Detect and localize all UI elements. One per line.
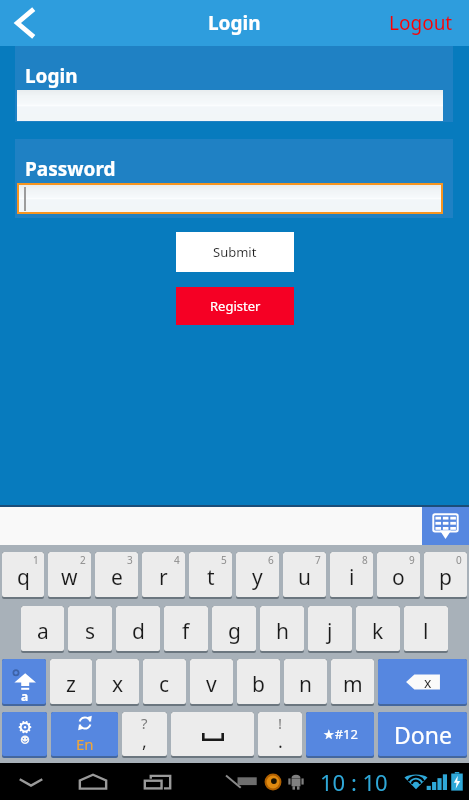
button[interactable]: Settings [2, 712, 47, 756]
button[interactable]: Symbols [306, 712, 374, 756]
staticText: . [278, 729, 283, 754]
staticText: Register [210, 297, 261, 315]
button[interactable] [19, 185, 441, 212]
staticText: Logout [389, 10, 453, 36]
staticText: 4 [174, 553, 180, 567]
button[interactable]: e [95, 552, 138, 597]
button[interactable]: Back [0, 0, 49, 46]
staticText: Login [208, 10, 261, 36]
button[interactable]: a [21, 606, 64, 651]
staticText: o [392, 563, 405, 592]
button[interactable] [17, 90, 443, 121]
button[interactable]: f [164, 606, 208, 651]
staticText: t [207, 563, 215, 592]
button[interactable]: w [48, 552, 91, 597]
staticText: ? [141, 713, 148, 733]
button[interactable]: p [424, 552, 467, 597]
button[interactable]: u [283, 552, 326, 597]
staticText: k [372, 617, 384, 646]
staticText: Login [25, 63, 78, 89]
button[interactable]: t [189, 552, 232, 597]
staticText: Done [394, 719, 452, 750]
staticText: 0 [456, 553, 462, 567]
staticText: z [66, 670, 76, 699]
button[interactable]: Recents [135, 763, 179, 800]
staticText: w [61, 563, 78, 592]
button[interactable]: Home [71, 763, 115, 800]
button[interactable]: Backspace [378, 659, 467, 704]
button[interactable]: Hide keyboard [422, 507, 469, 545]
staticText: g [228, 617, 241, 646]
button[interactable]: j [308, 606, 352, 651]
staticText: b [252, 670, 265, 699]
staticText: f [182, 617, 190, 646]
staticText: 8 [362, 553, 368, 567]
staticText: r [159, 563, 168, 592]
staticText: p [439, 563, 452, 592]
button[interactable]: Register [176, 287, 294, 325]
button[interactable]: l [404, 606, 448, 651]
button[interactable]: q [2, 552, 44, 597]
staticText: 5 [221, 553, 227, 567]
button[interactable]: d [116, 606, 160, 651]
staticText: i [349, 563, 355, 592]
button[interactable]: Logout [373, 10, 469, 36]
staticText: n [299, 670, 312, 699]
button[interactable]: o [377, 552, 420, 597]
staticText: q [17, 563, 30, 592]
staticText: j [327, 617, 333, 646]
staticText: , [142, 729, 147, 754]
button[interactable]: m [331, 659, 374, 704]
button[interactable]: s [68, 606, 112, 651]
staticText: u [298, 563, 311, 592]
button[interactable]: Back [9, 763, 53, 800]
button[interactable]: Shift [2, 659, 46, 704]
button[interactable]: k [356, 606, 400, 651]
staticText: a [21, 688, 29, 704]
staticText: Submit [213, 243, 257, 261]
button[interactable]: y [236, 552, 279, 597]
staticText: x [112, 670, 124, 699]
staticText: 10 : 10 [320, 767, 388, 797]
button[interactable]: z [50, 659, 92, 704]
staticText: En [76, 734, 94, 754]
button[interactable]: c [143, 659, 186, 704]
staticText: m [343, 670, 363, 699]
staticText: 3 [127, 553, 133, 567]
staticText: ★#12 [323, 725, 358, 743]
button[interactable]: Done [378, 712, 467, 756]
staticText: 6 [268, 553, 274, 567]
button[interactable]: r [142, 552, 185, 597]
staticText: 1 [33, 553, 39, 567]
staticText: s [85, 617, 96, 646]
staticText: e [111, 563, 123, 592]
staticText: l [423, 617, 429, 646]
button[interactable]: Language [51, 712, 118, 756]
staticText: 7 [315, 553, 321, 567]
button[interactable]: . [258, 712, 302, 756]
staticText: a [37, 617, 49, 646]
button[interactable]: b [237, 659, 280, 704]
button[interactable] [171, 712, 254, 756]
staticText: y [252, 563, 263, 592]
staticText: ! [278, 713, 283, 733]
staticText: 9 [409, 553, 415, 567]
staticText: h [276, 617, 289, 646]
staticText: Password [25, 156, 116, 182]
button[interactable]: g [212, 606, 256, 651]
button[interactable]: n [284, 659, 327, 704]
button[interactable]: v [190, 659, 233, 704]
button[interactable]: x [96, 659, 139, 704]
staticText: d [132, 617, 145, 646]
button[interactable]: , [122, 712, 167, 756]
staticText: 2 [80, 553, 86, 567]
button[interactable]: h [260, 606, 304, 651]
staticText: x [424, 673, 432, 692]
button[interactable]: Submit [176, 232, 294, 272]
staticText: c [159, 670, 170, 699]
button[interactable]: i [330, 552, 373, 597]
staticText: v [206, 670, 217, 699]
